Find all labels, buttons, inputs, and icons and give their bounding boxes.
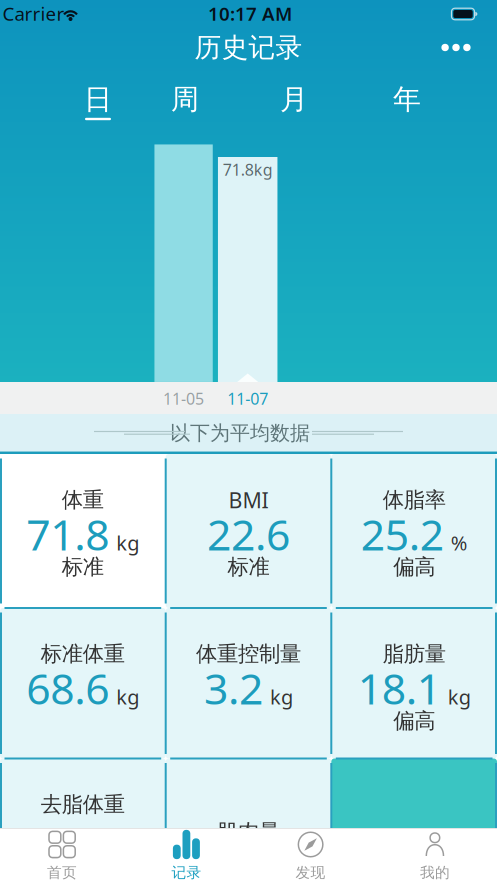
button[interactable]: 体脂率 bbox=[331, 454, 497, 608]
button[interactable]: 日 bbox=[70, 82, 126, 116]
button[interactable]: 指标 bbox=[331, 758, 497, 883]
button[interactable]: 我的 bbox=[390, 829, 480, 881]
staticText: kg bbox=[116, 529, 139, 556]
staticText: kg bbox=[448, 683, 471, 710]
staticText: 11-05 bbox=[163, 388, 204, 409]
staticText: 体重 bbox=[62, 487, 104, 513]
staticText: 周 bbox=[171, 82, 199, 117]
button[interactable]: 标准体重 bbox=[0, 608, 166, 758]
button[interactable]: 更多 bbox=[434, 32, 478, 62]
staticText: % bbox=[451, 529, 468, 556]
staticText: 偏高 bbox=[393, 554, 435, 580]
staticText: 体重控制量 bbox=[196, 641, 301, 667]
staticText: 年 bbox=[393, 82, 421, 117]
button[interactable]: 记录 bbox=[141, 829, 231, 881]
staticText: 脂肪量 bbox=[383, 641, 446, 667]
staticText: 3.2 bbox=[204, 660, 263, 716]
staticText: 月 bbox=[280, 82, 308, 117]
staticText: 11-07 bbox=[227, 388, 268, 409]
staticText: 标准 bbox=[227, 554, 269, 580]
staticText: 10:17 AM bbox=[208, 1, 292, 26]
button[interactable]: 年 bbox=[379, 82, 435, 116]
staticText: 71.8 bbox=[26, 506, 109, 562]
staticText: 22.6 bbox=[207, 506, 290, 562]
staticText: 25.2 bbox=[361, 506, 444, 562]
staticText: kg bbox=[270, 683, 293, 710]
button[interactable]: 11-05 bbox=[154, 144, 213, 382]
button[interactable]: 发现 bbox=[266, 829, 356, 881]
staticText: 肌肉量 bbox=[217, 819, 280, 845]
staticText: 71.8kg bbox=[223, 159, 273, 180]
button[interactable]: 首页 bbox=[17, 829, 107, 881]
staticText: Carrier bbox=[2, 1, 64, 26]
staticText: BMI bbox=[228, 486, 268, 514]
staticText: 68.6 bbox=[26, 660, 109, 716]
staticText: 标准体重 bbox=[41, 641, 125, 667]
button[interactable]: 周 bbox=[157, 82, 213, 116]
staticText: 去脂体重 bbox=[41, 791, 125, 818]
staticText: 日 bbox=[84, 82, 112, 117]
staticText: 发现 bbox=[296, 863, 326, 881]
button[interactable]: 月 bbox=[266, 82, 322, 116]
staticText: 记录 bbox=[171, 863, 201, 881]
button[interactable]: 脂肪量 bbox=[331, 608, 497, 758]
button[interactable]: 体重控制量 bbox=[166, 608, 331, 758]
button[interactable]: 体重 bbox=[0, 454, 166, 608]
button[interactable]: 指标 bbox=[166, 758, 331, 883]
staticText: kg bbox=[116, 683, 139, 710]
button[interactable]: 去脂体重 bbox=[0, 758, 166, 883]
button[interactable]: 11-07 71.8kg bbox=[218, 157, 277, 382]
button[interactable]: BMI bbox=[166, 454, 331, 608]
staticText: 历史记录 bbox=[194, 31, 302, 64]
staticText: 我的 bbox=[420, 863, 450, 881]
staticText: 18.1 bbox=[358, 660, 441, 716]
staticText: 体脂率 bbox=[383, 487, 446, 513]
staticText: 首页 bbox=[47, 863, 77, 881]
staticText: 标准 bbox=[62, 554, 104, 580]
staticText: 偏高 bbox=[393, 708, 435, 734]
staticText: 以下为平均数据 bbox=[170, 421, 310, 445]
